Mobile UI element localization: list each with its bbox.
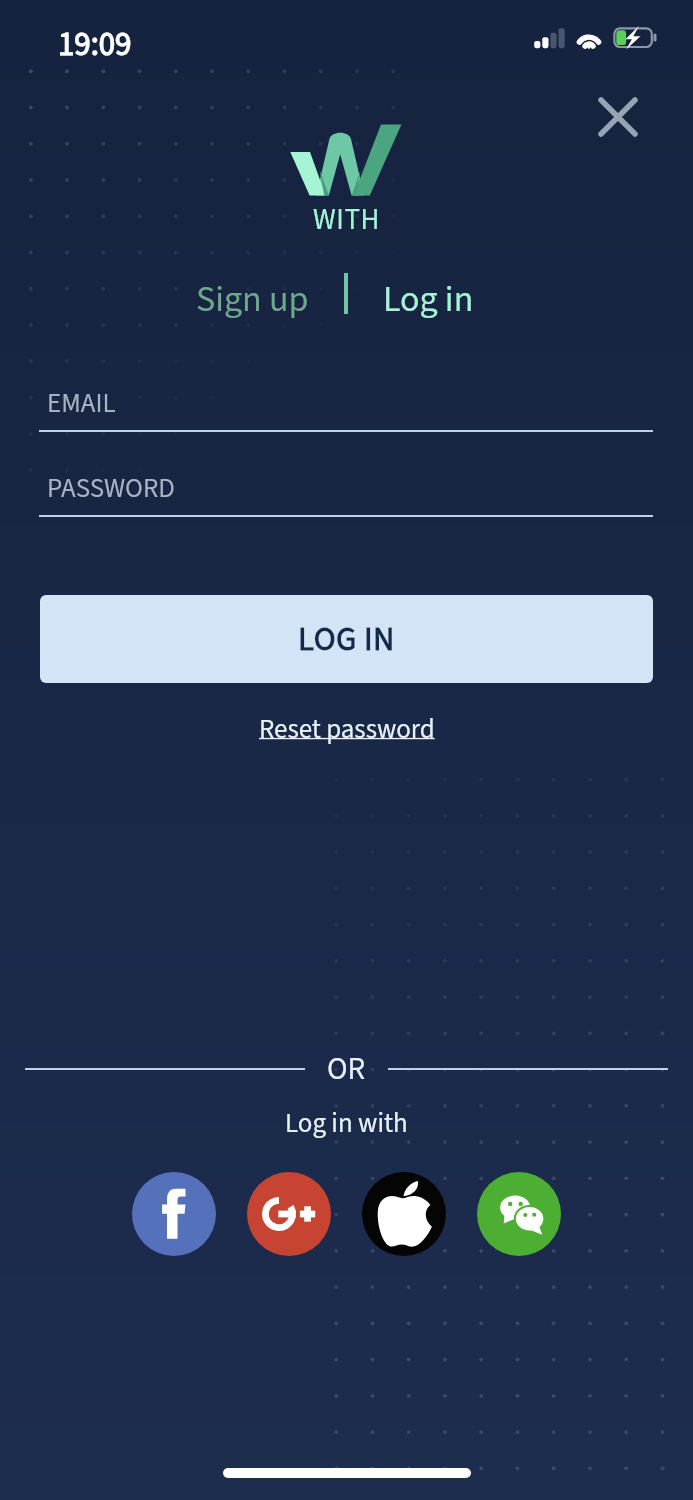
button[interactable]: Close — [588, 87, 648, 147]
button[interactable]: Sign up — [196, 274, 309, 325]
button[interactable]: Log in with Facebook — [132, 1172, 216, 1256]
staticText: WITH — [313, 199, 381, 240]
button[interactable]: Log in — [383, 274, 474, 325]
staticText: Sign up — [196, 274, 309, 325]
button[interactable]: Log in with Apple — [362, 1172, 446, 1256]
staticText: Log in with — [285, 1104, 408, 1142]
staticText: OR — [327, 1047, 366, 1091]
staticText: PASSWORD — [47, 469, 175, 507]
button[interactable]: LOG IN — [40, 595, 653, 683]
staticText: EMAIL — [47, 384, 116, 422]
staticText: 19:09 — [58, 21, 132, 68]
button[interactable]: Log in with WeChat — [477, 1172, 561, 1256]
button[interactable]: Log in with Google Plus — [247, 1172, 331, 1256]
staticText: Reset password — [259, 710, 435, 748]
staticText: Log in — [383, 274, 474, 325]
staticText: LOG IN — [298, 616, 395, 663]
button[interactable]: Reset password — [251, 706, 443, 752]
